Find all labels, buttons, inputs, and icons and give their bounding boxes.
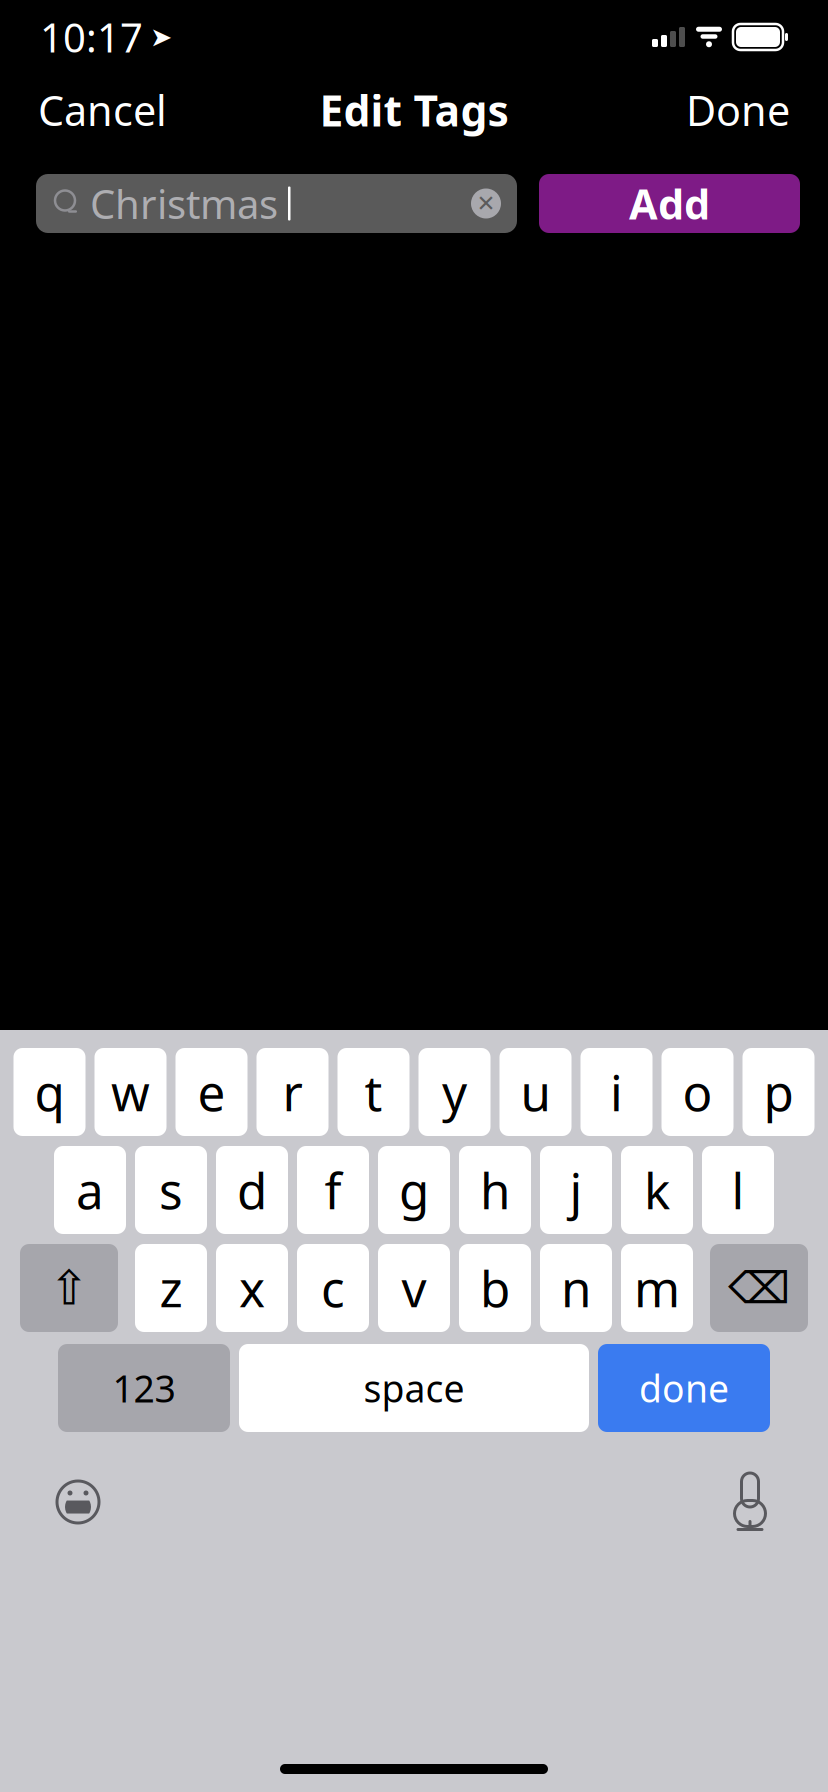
button[interactable]: Shift — [20, 1244, 118, 1332]
staticText: h — [480, 1157, 510, 1223]
button[interactable]: v — [378, 1244, 450, 1332]
staticText: p — [763, 1059, 793, 1125]
staticText: ⌫ — [728, 1263, 790, 1313]
button[interactable]: a — [54, 1146, 126, 1234]
staticText: m — [634, 1255, 680, 1321]
button[interactable]: i — [580, 1048, 652, 1136]
button[interactable]: Delete — [710, 1244, 808, 1332]
button[interactable]: Dictation — [724, 1472, 776, 1532]
staticText: w — [111, 1059, 150, 1125]
staticText: z — [159, 1255, 182, 1321]
button[interactable]: o — [661, 1048, 733, 1136]
button[interactable]: c — [297, 1244, 369, 1332]
staticText: Done — [686, 83, 790, 137]
staticText: d — [237, 1157, 267, 1223]
button[interactable]: q — [13, 1048, 85, 1136]
button[interactable]: w — [94, 1048, 166, 1136]
button[interactable]: e — [175, 1048, 247, 1136]
button[interactable]: Add — [539, 174, 800, 233]
staticText: q — [34, 1059, 64, 1125]
button[interactable]: f — [297, 1146, 369, 1234]
button[interactable]: 123 — [58, 1344, 230, 1432]
staticText: s — [159, 1157, 183, 1223]
staticText: done — [639, 1363, 729, 1413]
button[interactable]: t — [337, 1048, 409, 1136]
staticText: Christmas — [90, 177, 278, 230]
button[interactable]: h — [459, 1146, 531, 1234]
staticText: t — [364, 1059, 382, 1125]
staticText: 10:17 — [40, 10, 143, 63]
button[interactable]: z — [135, 1244, 207, 1332]
staticText: ✕ — [476, 191, 495, 216]
staticText: x — [239, 1255, 265, 1321]
staticText: r — [282, 1059, 302, 1125]
button[interactable]: d — [216, 1146, 288, 1234]
staticText: u — [520, 1059, 550, 1125]
button[interactable]: k — [621, 1146, 693, 1234]
staticText: Add — [629, 176, 710, 231]
button[interactable]: n — [540, 1244, 612, 1332]
staticText: f — [324, 1157, 341, 1223]
staticText: Cancel — [38, 83, 167, 137]
staticText: n — [561, 1255, 591, 1321]
button[interactable]: r — [256, 1048, 328, 1136]
button[interactable]: g — [378, 1146, 450, 1234]
staticText: l — [731, 1157, 744, 1223]
staticText: e — [197, 1059, 225, 1125]
button[interactable]: b — [459, 1244, 531, 1332]
staticText: o — [682, 1059, 712, 1125]
button[interactable]: m — [621, 1244, 693, 1332]
button[interactable]: l — [702, 1146, 774, 1234]
staticText: j — [569, 1157, 582, 1223]
button[interactable]: y — [418, 1048, 490, 1136]
button[interactable]: x — [216, 1244, 288, 1332]
staticText: c — [321, 1255, 345, 1321]
staticText: y — [442, 1059, 467, 1125]
staticText: b — [480, 1255, 510, 1321]
staticText: ➤ — [150, 22, 172, 52]
button[interactable]: done — [598, 1344, 770, 1432]
staticText: 123 — [112, 1363, 175, 1413]
staticText: i — [610, 1059, 623, 1125]
staticText: k — [644, 1157, 670, 1223]
staticText: v — [401, 1255, 426, 1321]
button[interactable]: p — [742, 1048, 814, 1136]
staticText: Edit Tags — [319, 82, 508, 138]
button[interactable]: u — [499, 1048, 571, 1136]
button[interactable]: Done — [676, 73, 800, 147]
button[interactable]: s — [135, 1146, 207, 1234]
staticText: g — [399, 1157, 429, 1223]
button[interactable]: j — [540, 1146, 612, 1234]
staticText: space — [363, 1363, 464, 1413]
button[interactable]: Emoji keyboard — [52, 1474, 104, 1530]
button[interactable]: Clear text — [463, 180, 509, 226]
staticText: a — [76, 1157, 104, 1223]
button[interactable]: Cancel — [28, 73, 177, 147]
staticText: ⇧ — [49, 1261, 89, 1315]
button[interactable]: space — [239, 1344, 589, 1432]
